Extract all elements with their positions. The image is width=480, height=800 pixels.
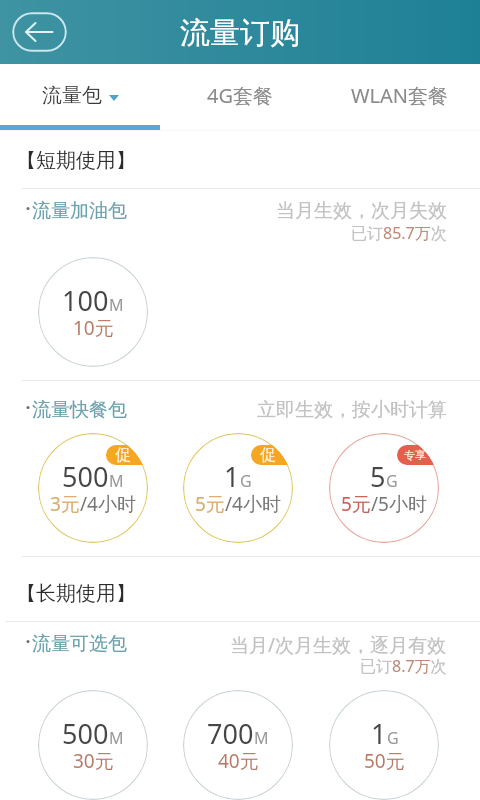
staticText: G bbox=[386, 470, 398, 492]
staticText: 500 bbox=[62, 715, 109, 752]
staticText: 促 bbox=[260, 445, 276, 465]
staticText: /4小时 bbox=[80, 491, 136, 517]
staticText: M bbox=[254, 727, 269, 749]
button[interactable]: 1 bbox=[183, 433, 293, 543]
staticText: /5小时 bbox=[371, 491, 427, 517]
staticText: 5 bbox=[370, 458, 386, 495]
staticText: 已订8.7万次 bbox=[360, 655, 447, 677]
button[interactable]: 1 bbox=[329, 690, 439, 800]
button[interactable]: 流量加油包 bbox=[24, 199, 127, 223]
button[interactable]: 100 bbox=[38, 257, 148, 367]
staticText: M bbox=[109, 727, 124, 749]
staticText: 5元 bbox=[195, 491, 225, 517]
staticText: 50元 bbox=[364, 748, 405, 774]
button[interactable]: 流量可选包 bbox=[24, 632, 127, 656]
staticText: 1 bbox=[224, 458, 240, 495]
staticText: 已订85.7万次 bbox=[351, 222, 447, 244]
staticText: 流量快餐包 bbox=[32, 398, 127, 422]
staticText: 700 bbox=[207, 715, 254, 752]
staticText: G bbox=[240, 470, 252, 492]
button[interactable]: 500 bbox=[38, 433, 148, 543]
button[interactable]: WLAN套餐 bbox=[320, 64, 480, 126]
staticText: 立即生效，按小时计算 bbox=[257, 398, 447, 422]
button[interactable]: 5 bbox=[329, 433, 439, 543]
staticText: 40元 bbox=[218, 748, 259, 774]
button[interactable]: 700 bbox=[183, 690, 293, 800]
staticText: 流量包 bbox=[42, 83, 102, 108]
staticText: 流量订购 bbox=[180, 14, 300, 52]
button[interactable]: 4G套餐 bbox=[160, 64, 320, 126]
staticText: 【长期使用】 bbox=[16, 581, 136, 606]
staticText: M bbox=[109, 470, 124, 492]
staticText: 5元 bbox=[341, 491, 371, 517]
button[interactable]: 流量快餐包 bbox=[24, 398, 127, 422]
button[interactable]: 流量包 bbox=[0, 64, 160, 126]
staticText: 专享 bbox=[404, 448, 426, 462]
staticText: 流量加油包 bbox=[32, 199, 127, 223]
staticText: 4G套餐 bbox=[207, 82, 273, 109]
staticText: 3元 bbox=[50, 491, 80, 517]
staticText: 当月生效，次月失效 bbox=[276, 199, 447, 223]
staticText: 10元 bbox=[73, 315, 114, 341]
button[interactable]: 500 bbox=[38, 690, 148, 800]
staticText: WLAN套餐 bbox=[351, 82, 449, 109]
button[interactable]: Back bbox=[12, 12, 67, 52]
staticText: 当月/次月生效，逐月有效 bbox=[230, 632, 447, 658]
staticText: 流量可选包 bbox=[32, 632, 127, 656]
staticText: 1 bbox=[371, 715, 387, 752]
staticText: 促 bbox=[115, 445, 131, 465]
staticText: 500 bbox=[62, 458, 109, 495]
staticText: 100 bbox=[62, 282, 109, 319]
staticText: G bbox=[387, 727, 399, 749]
staticText: 30元 bbox=[73, 748, 114, 774]
staticText: M bbox=[109, 294, 124, 316]
staticText: 【短期使用】 bbox=[16, 148, 136, 173]
staticText: /4小时 bbox=[225, 491, 281, 517]
